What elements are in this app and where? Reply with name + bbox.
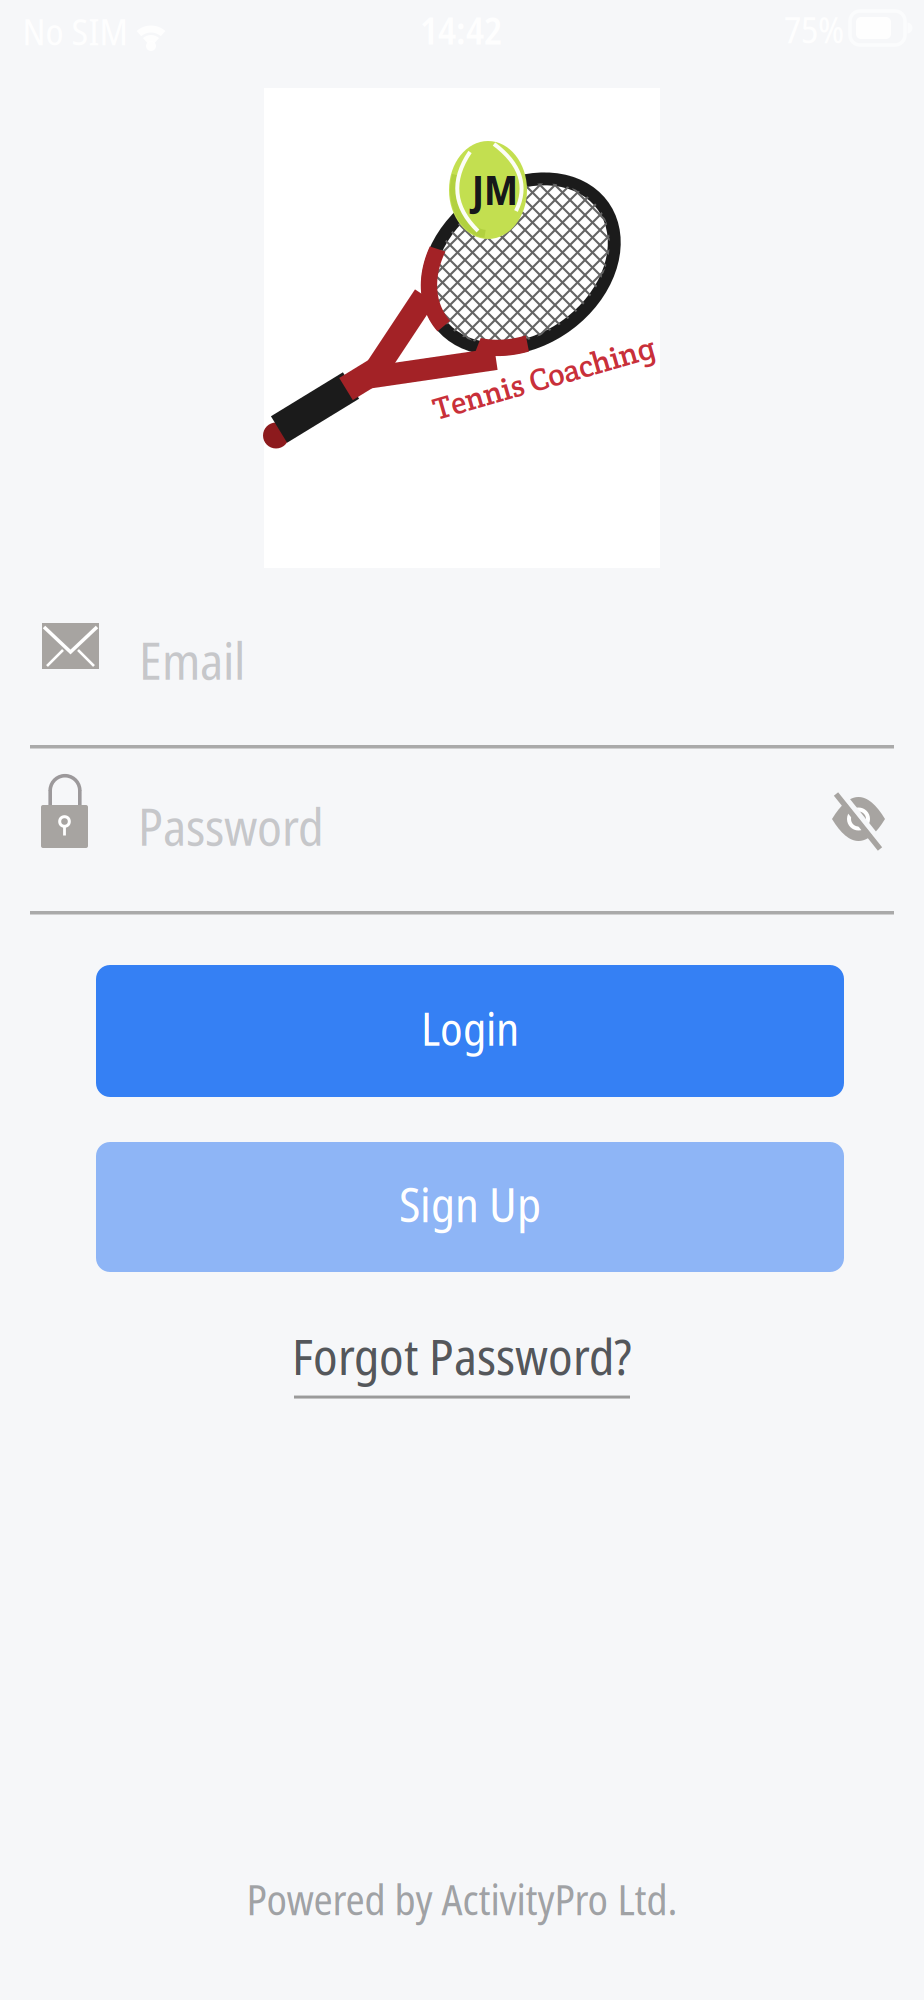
staticText: Login bbox=[421, 997, 519, 1059]
button[interactable]: Forgot Password? bbox=[292, 1321, 632, 1398]
staticText: 14:42 bbox=[420, 5, 502, 55]
staticText: JM bbox=[472, 161, 518, 217]
staticText: Password bbox=[138, 791, 324, 860]
staticText: Powered by ActivityPro Ltd. bbox=[246, 1871, 677, 1927]
button[interactable]: Show password bbox=[817, 781, 901, 865]
staticText: Sign Up bbox=[399, 1172, 541, 1236]
button[interactable]: Email bbox=[30, 623, 894, 745]
button[interactable]: Login bbox=[96, 965, 844, 1097]
staticText: Tennis Coaching bbox=[429, 358, 659, 398]
button[interactable]: Sign Up bbox=[96, 1142, 844, 1272]
button[interactable]: Password bbox=[30, 752, 894, 912]
staticText: Email bbox=[139, 625, 245, 694]
staticText: Forgot Password? bbox=[292, 1321, 632, 1389]
